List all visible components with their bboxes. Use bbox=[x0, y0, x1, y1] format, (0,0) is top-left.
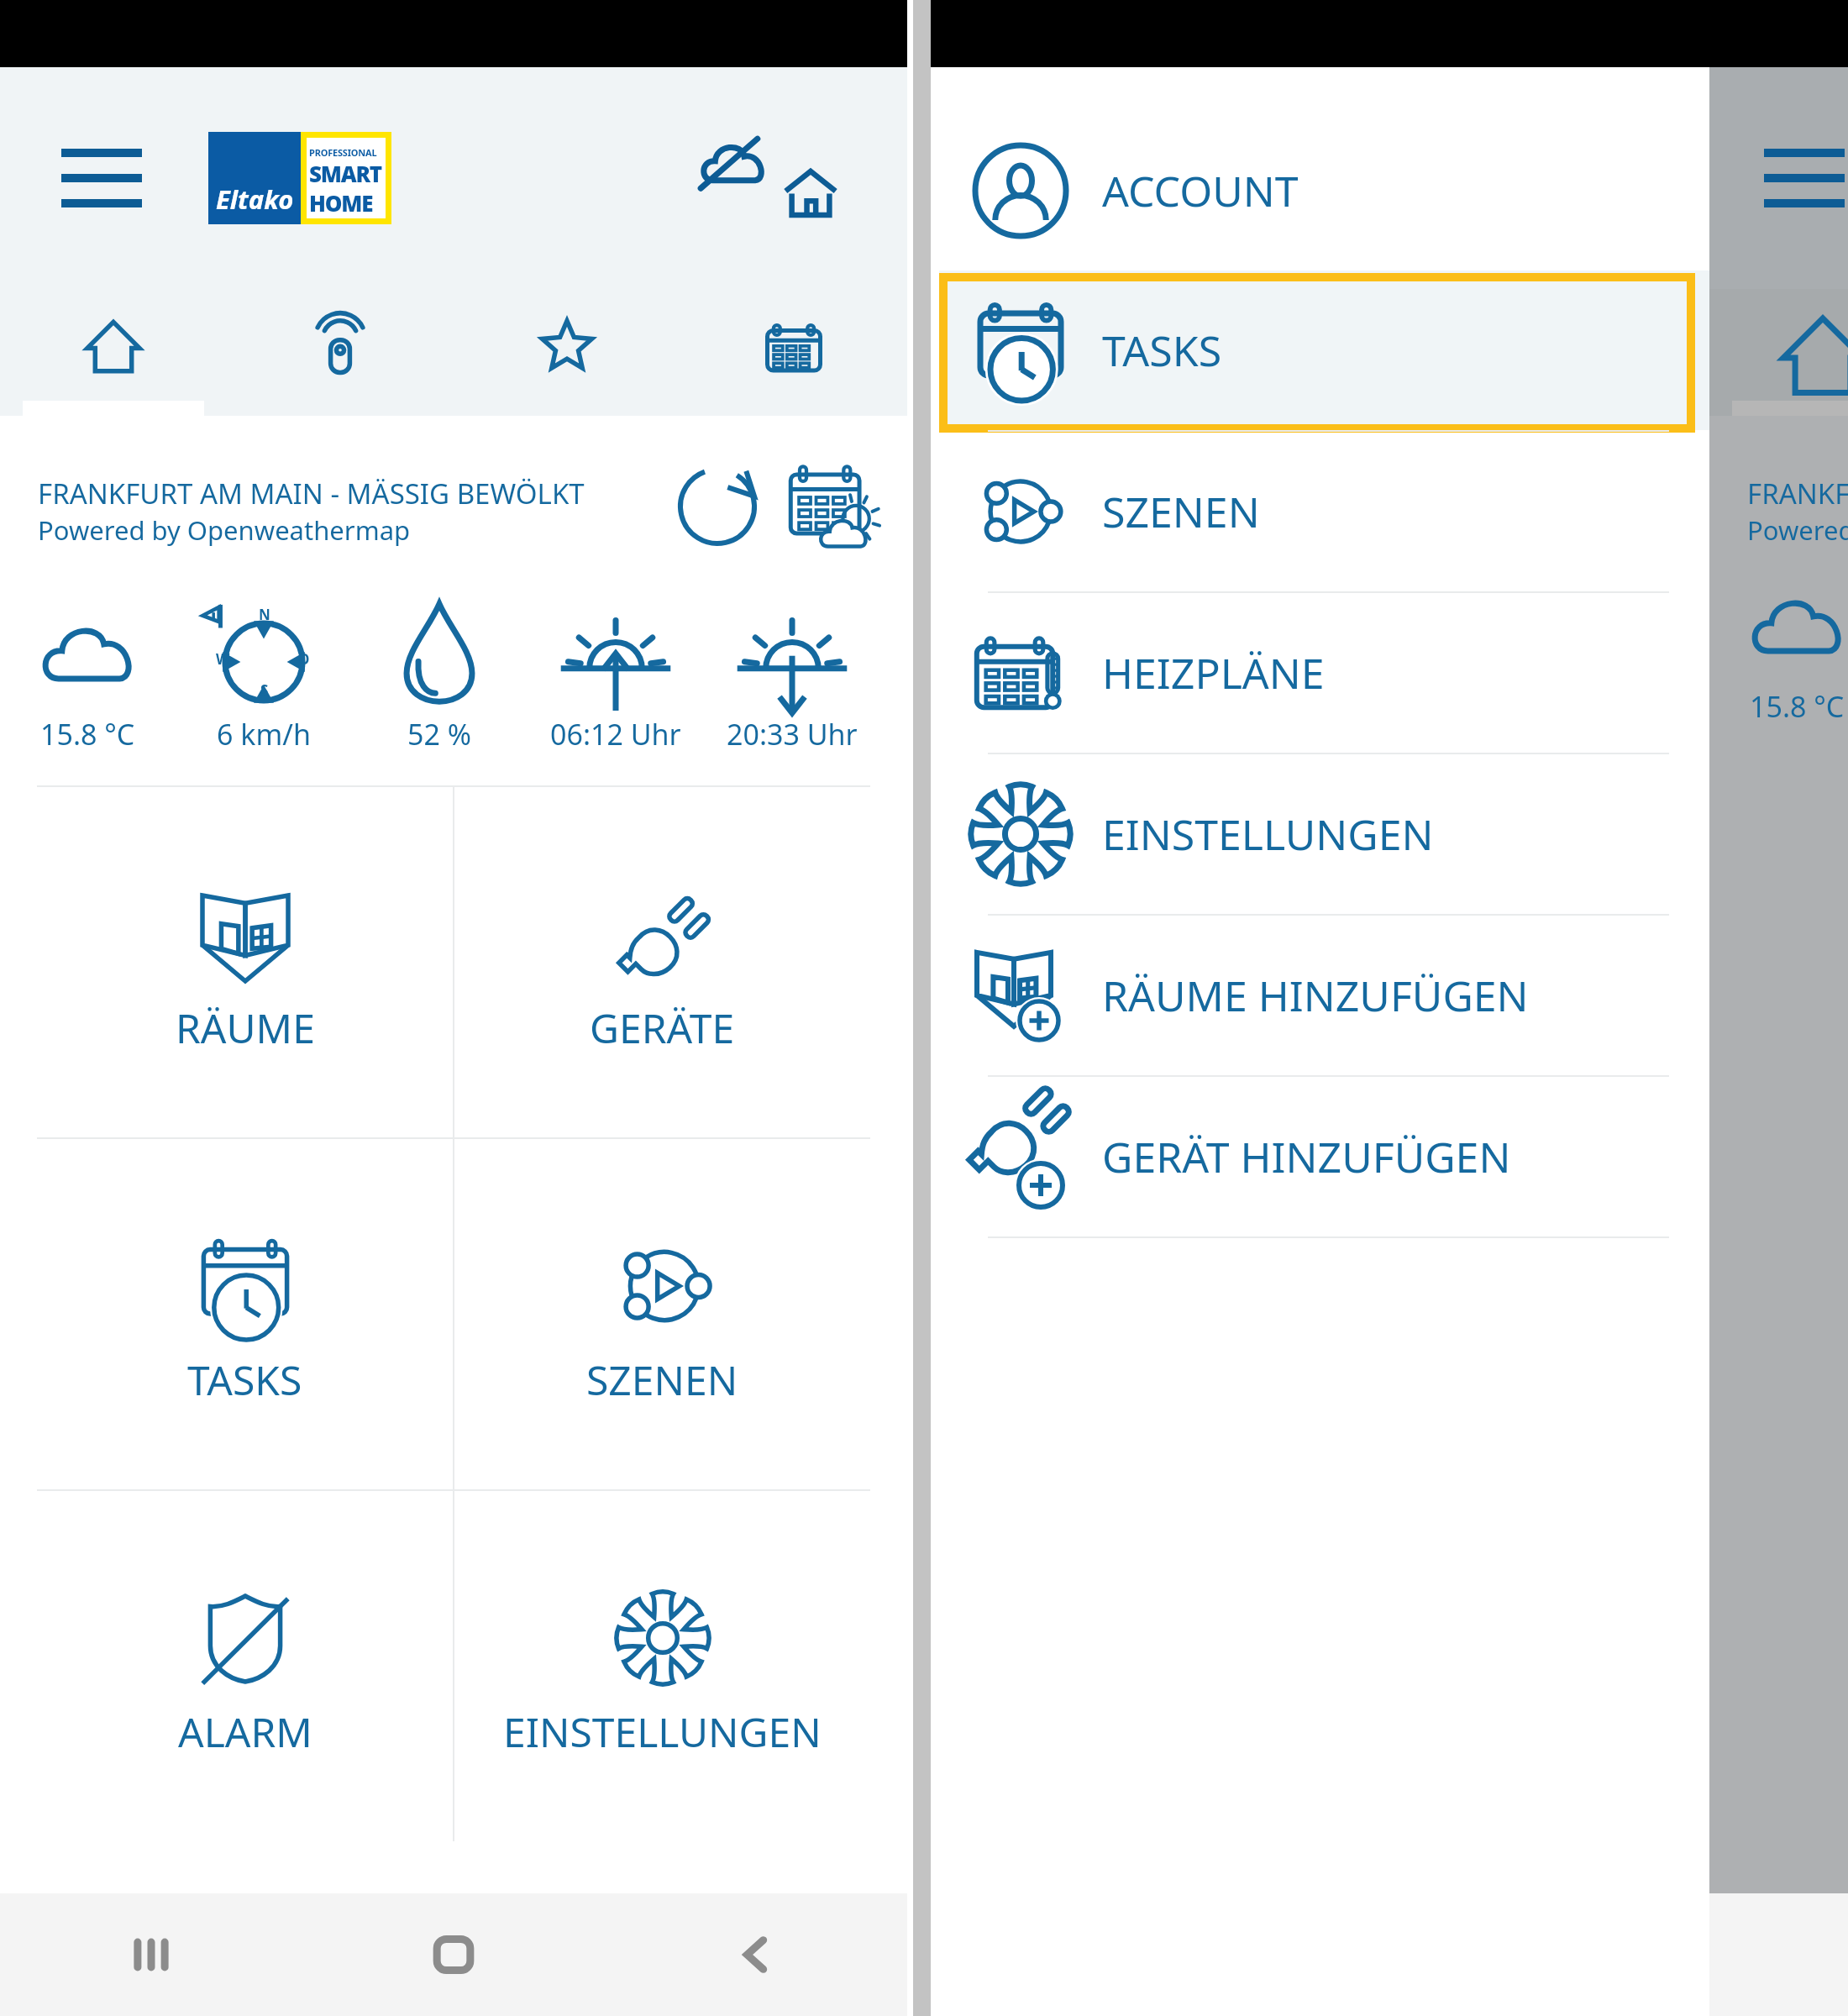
staticText: SZENEN bbox=[586, 1352, 738, 1407]
button[interactable]: TASKS bbox=[37, 1139, 453, 1489]
staticText: 15.8 °C bbox=[1750, 687, 1845, 726]
button[interactable]: SZENEN bbox=[454, 1139, 870, 1489]
button[interactable]: Weather forecast bbox=[781, 456, 882, 557]
button[interactable]: Home bbox=[0, 289, 227, 416]
staticText: PROFESSIONAL bbox=[309, 146, 377, 159]
button[interactable]: RÄUME bbox=[37, 787, 453, 1137]
button[interactable]: SZENEN bbox=[931, 432, 1709, 591]
staticText: HOME bbox=[309, 188, 373, 218]
button[interactable]: Back bbox=[605, 1893, 907, 2016]
button[interactable]: Home bbox=[764, 123, 874, 233]
staticText: Powered by Openweathermap bbox=[1747, 512, 1848, 548]
button[interactable]: EINSTELLUNGEN bbox=[931, 754, 1709, 914]
button[interactable]: ALARM bbox=[37, 1491, 453, 1841]
staticText: FRANKFURT AM MAIN - MÄSSIG BEWÖLKT bbox=[38, 475, 585, 512]
staticText: W bbox=[216, 649, 230, 669]
staticText: Powered by Openweathermap bbox=[38, 512, 411, 548]
staticText: EINSTELLUNGEN bbox=[1102, 806, 1434, 863]
button[interactable]: Favourites bbox=[454, 289, 680, 416]
staticText: 06:12 Uhr bbox=[550, 715, 681, 753]
staticText: 52 % bbox=[407, 715, 471, 753]
staticText: ACCOUNT bbox=[1102, 162, 1299, 219]
staticText: O bbox=[298, 649, 310, 669]
staticText: TASKS bbox=[1102, 322, 1222, 379]
button[interactable]: EINSTELLUNGEN bbox=[454, 1491, 870, 1841]
staticText: ALARM bbox=[178, 1704, 312, 1759]
button[interactable]: Menu bbox=[47, 123, 156, 233]
staticText: GERÄTE bbox=[590, 1000, 735, 1055]
staticText: RÄUME bbox=[176, 1000, 315, 1055]
staticText: HEIZPLÄNE bbox=[1102, 644, 1325, 701]
staticText: N bbox=[259, 605, 270, 624]
staticText: GERÄT HINZUFÜGEN bbox=[1102, 1128, 1511, 1185]
staticText: TASKS bbox=[187, 1352, 302, 1407]
button[interactable]: Schedule bbox=[680, 289, 907, 416]
staticText: S bbox=[260, 680, 269, 700]
button[interactable]: Home bbox=[302, 1893, 605, 2016]
button[interactable]: Eltako bbox=[208, 132, 391, 224]
button[interactable]: Cloud offline bbox=[655, 123, 764, 233]
button[interactable]: Devices bbox=[227, 289, 454, 416]
staticText: EINSTELLUNGEN bbox=[503, 1704, 822, 1759]
button[interactable]: TASKS bbox=[931, 270, 1709, 430]
staticText: RÄUME HINZUFÜGEN bbox=[1102, 967, 1529, 1024]
staticText: SZENEN bbox=[1102, 483, 1260, 540]
staticText: FRANKFURT AM MAIN - MÄSSIG bbox=[1747, 475, 1848, 512]
staticText: 6 km/h bbox=[217, 715, 311, 753]
staticText: Eltako bbox=[216, 181, 294, 217]
button[interactable]: RÄUME HINZUFÜGEN bbox=[931, 916, 1709, 1075]
button[interactable]: GERÄTE bbox=[454, 787, 870, 1137]
button[interactable]: Recent apps bbox=[0, 1893, 302, 2016]
button[interactable]: ACCOUNT bbox=[931, 111, 1709, 270]
staticText: SMART bbox=[309, 159, 381, 188]
staticText: 20:33 Uhr bbox=[727, 715, 858, 753]
button[interactable]: Refresh bbox=[667, 456, 768, 557]
button[interactable]: GERÄT HINZUFÜGEN bbox=[931, 1077, 1709, 1236]
staticText: 15.8 °C bbox=[40, 715, 135, 753]
button[interactable]: HEIZPLÄNE bbox=[931, 593, 1709, 753]
